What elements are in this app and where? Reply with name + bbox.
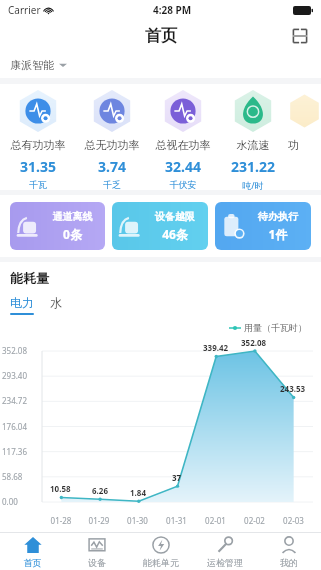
- staticText: 0.00: [2, 496, 18, 507]
- staticText: 01-29: [80, 515, 118, 526]
- staticText: 首页: [145, 26, 177, 46]
- staticText: 01-28: [42, 515, 80, 526]
- button[interactable]: 水流速: [218, 90, 288, 190]
- staticText: 能耗量: [10, 270, 49, 286]
- button[interactable]: Scan QR code: [289, 25, 311, 47]
- staticText: 用量（千瓦时）: [244, 322, 307, 333]
- button[interactable]: 总无功功率: [76, 90, 148, 190]
- button[interactable]: 能耗单元: [129, 533, 193, 570]
- staticText: 设备: [65, 557, 129, 568]
- staticText: 通道离线: [45, 210, 100, 223]
- staticText: 02-01: [196, 515, 235, 526]
- staticText: 293.40: [2, 370, 28, 381]
- staticText: 231.22: [218, 157, 288, 176]
- staticText: 电力: [10, 295, 34, 310]
- staticText: 37: [172, 472, 182, 483]
- staticText: 117.36: [2, 446, 28, 457]
- staticText: 吨/时: [218, 179, 288, 190]
- staticText: 首页: [0, 557, 65, 568]
- staticText: Carrier: [8, 3, 41, 17]
- staticText: 01-31: [157, 515, 196, 526]
- staticText: 339.42: [203, 342, 229, 353]
- staticText: 3.74: [76, 157, 148, 176]
- staticText: 0条: [45, 226, 100, 242]
- button[interactable]: 康派智能: [10, 52, 321, 78]
- staticText: 02-02: [235, 515, 274, 526]
- staticText: 水: [50, 295, 62, 310]
- staticText: 能耗单元: [129, 557, 193, 568]
- staticText: 1.84: [130, 487, 146, 498]
- button[interactable]: 通道离线: [10, 202, 105, 250]
- staticText: 千瓦: [0, 179, 76, 190]
- staticText: 352.08: [2, 345, 28, 356]
- staticText: 我的: [257, 557, 321, 568]
- staticText: 水流速: [218, 138, 288, 152]
- staticText: 设备越限: [147, 210, 203, 223]
- button[interactable]: 功: [288, 90, 321, 152]
- button[interactable]: 总有功功率: [0, 90, 76, 190]
- button[interactable]: 电力: [10, 295, 34, 315]
- staticText: 功: [288, 138, 321, 152]
- button[interactable]: 我的: [257, 533, 321, 570]
- button[interactable]: 设备: [65, 533, 129, 570]
- staticText: 总视在功率: [148, 138, 218, 152]
- button[interactable]: 待办执行: [215, 202, 311, 250]
- staticText: 02-03: [274, 515, 313, 526]
- button[interactable]: 首页: [0, 533, 65, 570]
- staticText: 总无功功率: [76, 138, 148, 152]
- button[interactable]: 运检管理: [193, 533, 257, 570]
- staticText: 32.44: [148, 157, 218, 176]
- staticText: 1件: [250, 226, 306, 242]
- button[interactable]: 水: [50, 295, 62, 315]
- staticText: 176.04: [2, 421, 28, 432]
- staticText: 58.68: [2, 471, 23, 482]
- staticText: 运检管理: [193, 557, 257, 568]
- staticText: 总有功功率: [0, 138, 76, 152]
- staticText: 234.72: [2, 395, 28, 406]
- staticText: 待办执行: [250, 210, 306, 223]
- staticText: 千伏安: [148, 179, 218, 190]
- staticText: 243.53: [280, 383, 306, 394]
- staticText: 352.08: [241, 337, 267, 348]
- button[interactable]: 设备越限: [112, 202, 208, 250]
- staticText: 4:28 PM: [153, 3, 192, 17]
- staticText: 46条: [147, 226, 203, 242]
- staticText: 01-30: [118, 515, 157, 526]
- button[interactable]: 总视在功率: [148, 90, 218, 190]
- staticText: 10.58: [50, 483, 71, 494]
- staticText: 千乏: [76, 179, 148, 190]
- staticText: 31.35: [0, 157, 76, 176]
- staticText: 康派智能: [10, 58, 54, 72]
- staticText: 6.26: [92, 485, 108, 496]
